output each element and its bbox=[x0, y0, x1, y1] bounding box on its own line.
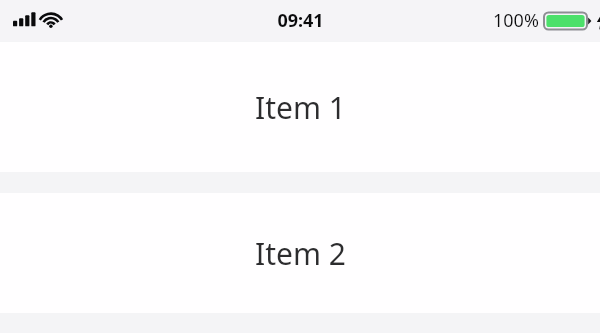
staticText: 100% bbox=[493, 8, 539, 33]
staticText: 09:41 bbox=[277, 8, 324, 33]
staticText: Item 1 bbox=[255, 87, 346, 128]
staticText: Item 2 bbox=[255, 233, 346, 274]
button[interactable]: Item 1 bbox=[0, 42, 600, 172]
button[interactable]: Item 2 bbox=[0, 193, 600, 313]
